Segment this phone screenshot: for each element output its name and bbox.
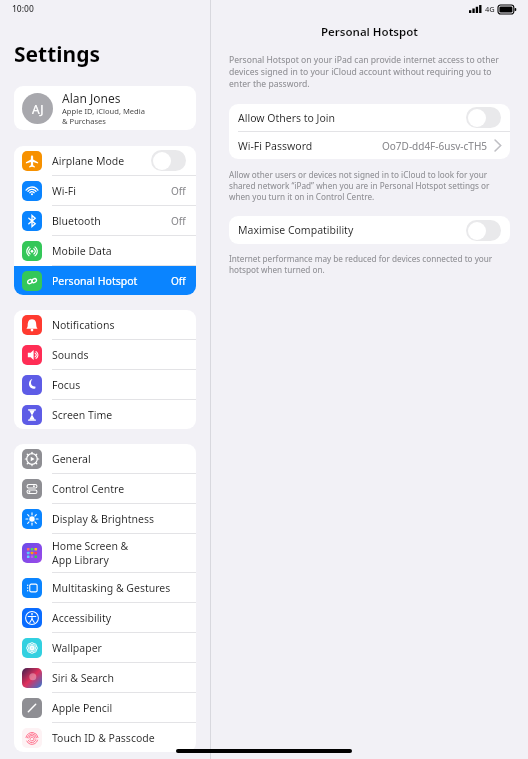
staticText: Internet performance may be reduced for … xyxy=(229,253,510,275)
staticText: Wi-Fi Password xyxy=(238,139,382,153)
staticText: Maximise Compatibility xyxy=(238,223,466,237)
button[interactable]: Accessibility xyxy=(14,603,196,633)
staticText: Off xyxy=(171,184,186,198)
staticText: Multitasking & Gestures xyxy=(52,581,171,595)
staticText: Allow Others to Join xyxy=(238,111,466,125)
button[interactable]: Bluetooth xyxy=(14,206,196,236)
staticText: Off xyxy=(171,214,186,228)
staticText: Oo7D-dd4F-6usv-cTH5 xyxy=(382,139,488,153)
button[interactable]: Apple Pencil xyxy=(14,693,196,723)
staticText: AJ xyxy=(32,101,44,117)
button[interactable]: Personal Hotspot xyxy=(14,266,196,295)
staticText: Wi-Fi xyxy=(52,184,77,198)
staticText: Personal Hotspot xyxy=(52,274,138,288)
button[interactable]: Mobile Data xyxy=(14,236,196,266)
staticText: Touch ID & Passcode xyxy=(52,731,155,745)
button[interactable]: Wallpaper xyxy=(14,633,196,663)
button[interactable]: Maximise Compatibility xyxy=(229,216,510,244)
staticText: General xyxy=(52,452,91,466)
staticText: Allow other users or devices not signed … xyxy=(229,169,510,202)
button[interactable]: AJ xyxy=(14,86,196,130)
staticText: Sounds xyxy=(52,348,89,362)
staticText: Alan Jones xyxy=(62,90,121,106)
button[interactable]: Siri & Search xyxy=(14,663,196,693)
button[interactable]: Screen Time xyxy=(14,400,196,429)
button[interactable]: Wi-Fi xyxy=(14,176,196,206)
staticText: Mobile Data xyxy=(52,244,112,258)
staticText: Focus xyxy=(52,378,81,392)
staticText: Apple ID, iCloud, Media xyxy=(62,106,145,116)
button[interactable]: Control Centre xyxy=(14,474,196,504)
button[interactable]: Touch ID & Passcode xyxy=(14,723,196,752)
button[interactable]: Home Screen & xyxy=(14,534,196,573)
button[interactable]: Display & Brightness xyxy=(14,504,196,534)
staticText: Control Centre xyxy=(52,482,125,496)
staticText: Apple Pencil xyxy=(52,701,113,715)
staticText: Screen Time xyxy=(52,408,113,422)
button[interactable]: Multitasking & Gestures xyxy=(14,573,196,603)
staticText: Bluetooth xyxy=(52,214,101,228)
button[interactable]: Wi-Fi Password xyxy=(229,132,510,159)
staticText: Display & Brightness xyxy=(52,512,155,526)
button[interactable]: Focus xyxy=(14,370,196,400)
staticText: Notifications xyxy=(52,318,115,332)
staticText: Siri & Search xyxy=(52,671,114,685)
staticText: Accessibility xyxy=(52,611,112,625)
button[interactable]: Sounds xyxy=(14,340,196,370)
button[interactable]: Notifications xyxy=(14,310,196,340)
staticText: Settings xyxy=(14,40,101,69)
button[interactable]: General xyxy=(14,444,196,474)
staticText: 4G xyxy=(485,4,495,14)
staticText: Off xyxy=(171,274,186,288)
staticText: Wallpaper xyxy=(52,641,102,655)
staticText: Personal Hotspot xyxy=(321,24,418,40)
staticText: Airplane Mode xyxy=(52,154,125,168)
staticText: & Purchases xyxy=(62,116,106,126)
staticText: App Library xyxy=(52,553,109,567)
staticText: Home Screen & xyxy=(52,539,129,553)
staticText: Personal Hotspot on your iPad can provid… xyxy=(229,54,510,90)
button[interactable]: Airplane Mode xyxy=(14,146,196,176)
button[interactable]: Allow Others to Join xyxy=(229,104,510,131)
staticText: 10:00 xyxy=(12,3,34,15)
